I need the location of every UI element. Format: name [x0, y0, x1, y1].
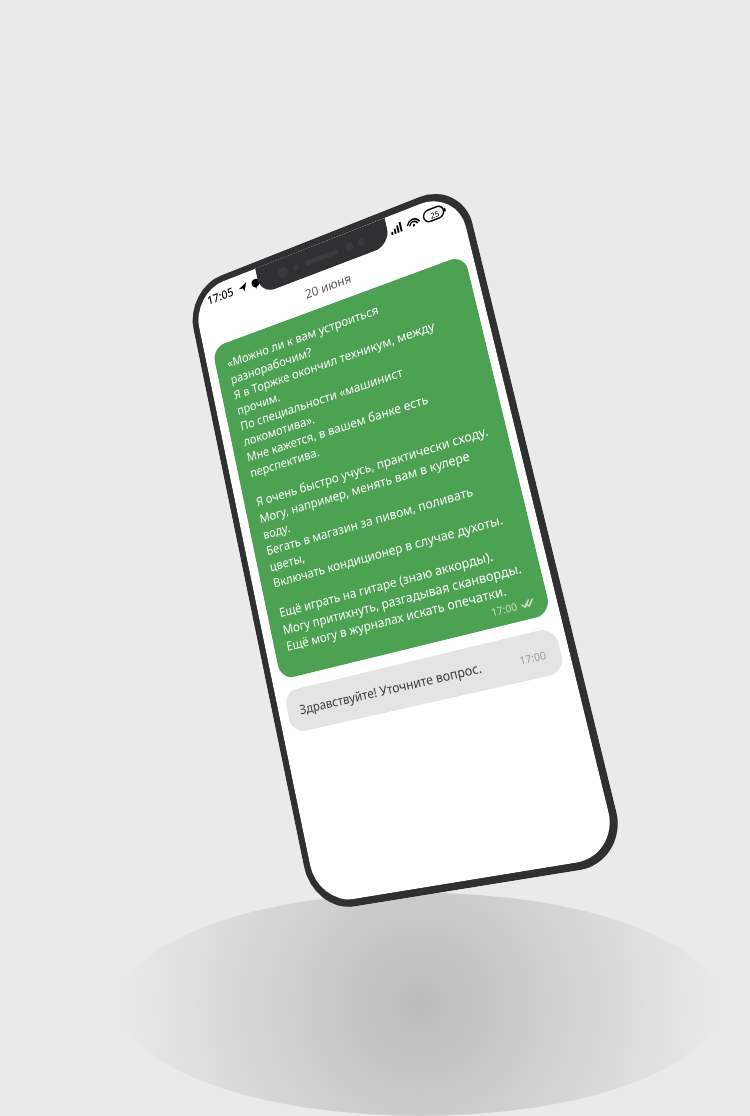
staticText: Ещё играть на гитаре (знаю аккорды). Мог… [278, 540, 528, 654]
staticText: Здравствуйте! Уточните вопрос. [298, 659, 483, 718]
staticText: 20 июня [199, 225, 470, 342]
button[interactable]: Здравствуйте! Уточните вопрос. [283, 627, 566, 734]
staticText: 17:00 [490, 598, 519, 619]
staticText: 25 [429, 207, 441, 221]
staticText: 17:00 [518, 647, 548, 668]
staticText: Я очень быстро учусь, практически сходу.… [255, 421, 515, 590]
other: Read [520, 598, 534, 609]
staticText: 17:05 [206, 283, 236, 309]
staticText: «Можно ли к вам устроиться разнорабочим?… [226, 273, 486, 480]
button[interactable]: «Можно ли к вам устроиться разнорабочим?… [212, 254, 552, 680]
